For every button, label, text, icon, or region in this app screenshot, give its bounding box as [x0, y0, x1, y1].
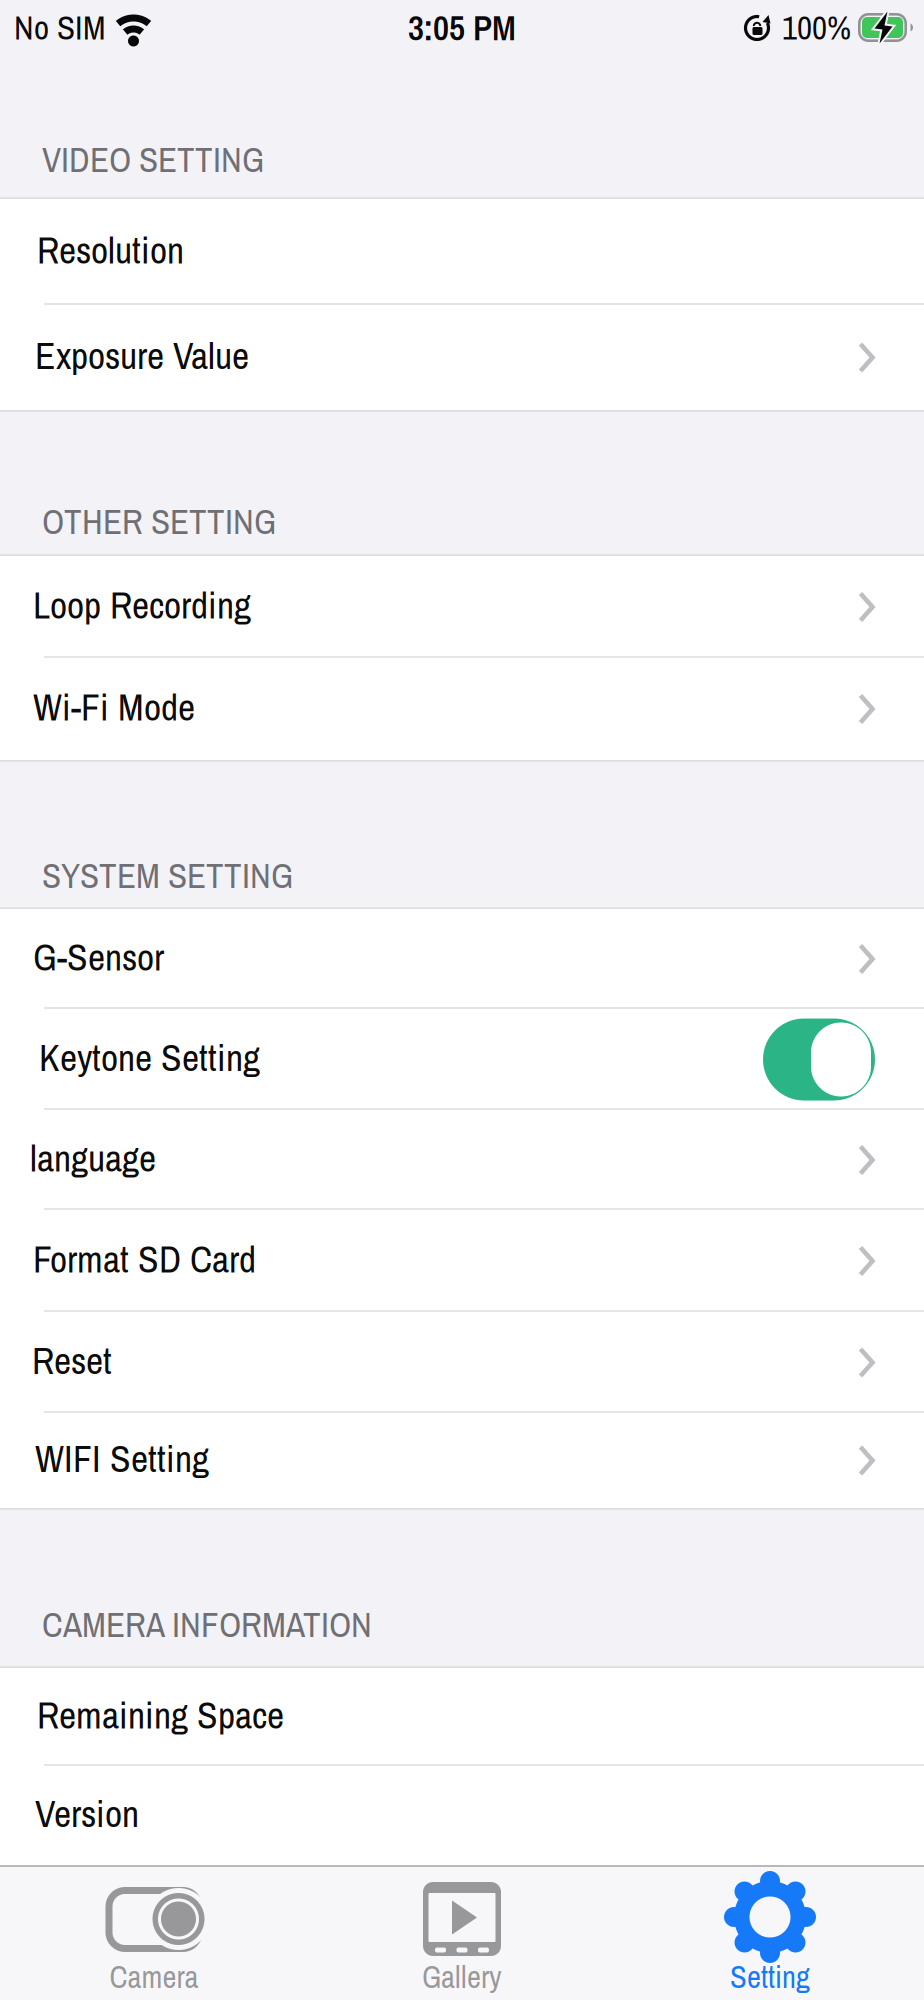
- staticText: Version: [35, 1788, 139, 1839]
- button[interactable]: Keytone Setting: [0, 1009, 924, 1110]
- staticText: Reset: [32, 1335, 112, 1386]
- button[interactable]: Version: [0, 1766, 924, 1865]
- button[interactable]: Loop Recording: [0, 556, 924, 658]
- button[interactable]: Wi-Fi Mode: [0, 658, 924, 760]
- staticText: G-Sensor: [33, 932, 164, 982]
- staticText: VIDEO SETTING: [42, 136, 264, 183]
- staticText: CAMERA INFORMATION: [42, 1601, 372, 1648]
- button[interactable]: language: [0, 1110, 924, 1210]
- staticText: Format SD Card: [33, 1234, 256, 1284]
- staticText: OTHER SETTING: [42, 498, 276, 545]
- staticText: 100%: [782, 5, 851, 50]
- staticText: Keytone Setting: [39, 1032, 260, 1083]
- button[interactable]: Format SD Card: [0, 1210, 924, 1312]
- button[interactable]: G-Sensor: [0, 909, 924, 1009]
- staticText: WIFI Setting: [35, 1433, 209, 1484]
- button[interactable]: WIFI Setting: [0, 1413, 924, 1508]
- staticText: Remaining Space: [37, 1690, 284, 1740]
- staticText: Camera: [109, 1956, 198, 1998]
- staticText: Setting: [730, 1956, 810, 1998]
- button[interactable]: Camera: [0, 1865, 308, 2000]
- staticText: Gallery: [422, 1956, 502, 1998]
- button[interactable]: Reset: [0, 1312, 924, 1413]
- staticText: Loop Recording: [33, 580, 251, 630]
- staticText: language: [30, 1133, 156, 1183]
- staticText: Wi-Fi Mode: [33, 682, 195, 732]
- staticText: Exposure Value: [35, 330, 249, 381]
- button[interactable]: Gallery: [308, 1865, 616, 2000]
- staticText: No SIM: [14, 5, 106, 50]
- staticText: SYSTEM SETTING: [42, 852, 293, 899]
- button[interactable]: Resolution: [0, 199, 924, 305]
- button[interactable]: Remaining Space: [0, 1668, 924, 1766]
- button[interactable]: Setting: [616, 1865, 924, 2000]
- staticText: 3:05 PM: [408, 4, 516, 51]
- button[interactable]: Exposure Value: [0, 305, 924, 410]
- staticText: Resolution: [37, 225, 184, 275]
